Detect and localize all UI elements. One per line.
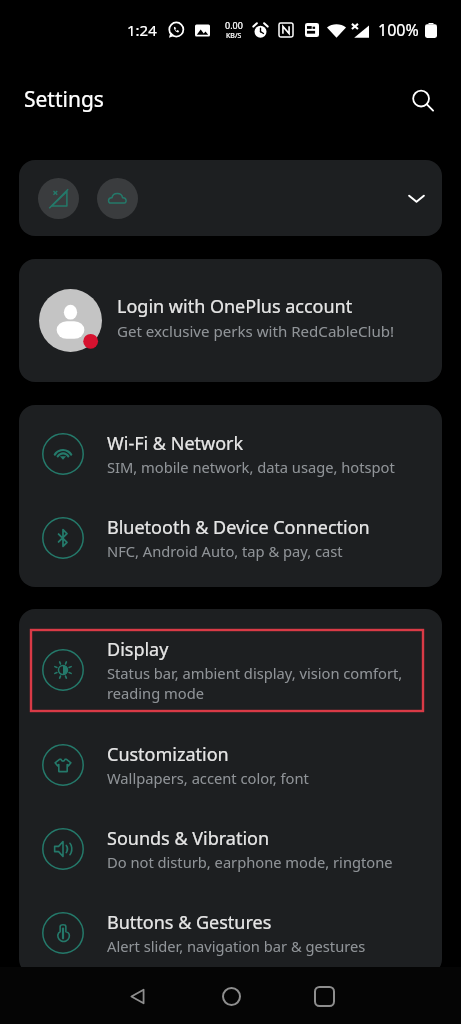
staticText: Wi-Fi & Network	[107, 431, 244, 456]
button[interactable]: Recent apps	[300, 972, 348, 1020]
staticText: Sounds & Vibration	[107, 826, 270, 851]
button[interactable]: Display	[19, 616, 442, 723]
staticText: 1:24	[127, 20, 157, 40]
staticText: 0.00	[225, 19, 243, 31]
button[interactable]: Cloud	[97, 178, 138, 219]
staticText: Login with OnePlus account	[117, 294, 353, 319]
button[interactable]: Customization	[19, 723, 442, 807]
staticText: reading mode	[107, 683, 204, 703]
button[interactable]: Login with OnePlus account	[19, 259, 442, 382]
staticText: Status bar, ambient display, vision comf…	[107, 663, 403, 683]
staticText: NFC, Android Auto, tap & pay, cast	[107, 541, 343, 561]
button[interactable]: Back	[113, 972, 161, 1020]
staticText: Do not disturb, earphone mode, ringtone	[107, 852, 393, 872]
button[interactable]: Search	[401, 79, 445, 123]
staticText: Buttons & Gestures	[107, 910, 272, 935]
staticText: Settings	[24, 85, 104, 114]
staticText: KB/S	[226, 31, 242, 41]
button[interactable]: Sounds & Vibration	[19, 807, 442, 891]
button[interactable]: Buttons & Gestures	[19, 891, 442, 975]
staticText: Get exclusive perks with RedCableClub!	[117, 321, 395, 342]
button[interactable]: Bluetooth & Device Connection	[19, 496, 442, 580]
button[interactable]: Airplane mode	[38, 178, 79, 219]
staticText: Display	[107, 637, 169, 662]
button[interactable]: Airplane mode	[19, 160, 442, 236]
button[interactable]: Wi-Fi & Network	[19, 412, 442, 496]
staticText: Customization	[107, 742, 229, 767]
button[interactable]: Expand	[398, 180, 434, 216]
staticText: Wallpapers, accent color, font	[107, 768, 309, 788]
staticText: Bluetooth & Device Connection	[107, 515, 370, 540]
staticText: Alert slider, navigation bar & gestures	[107, 936, 366, 956]
staticText: SIM, mobile network, data usage, hotspot	[107, 457, 395, 477]
button[interactable]: Home	[207, 972, 255, 1020]
staticText: 100%	[378, 19, 419, 41]
